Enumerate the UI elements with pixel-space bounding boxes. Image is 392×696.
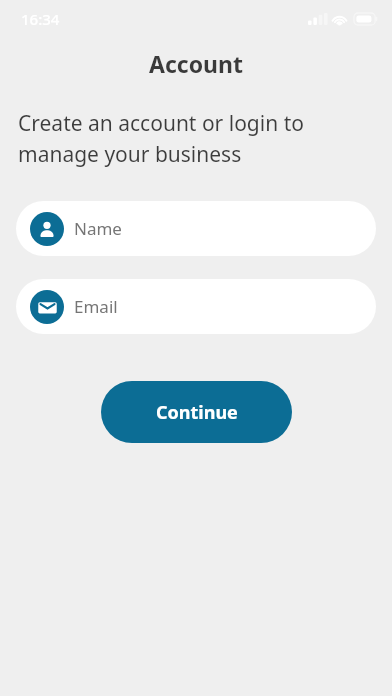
other: Name <box>30 212 64 246</box>
staticText: Email <box>74 295 118 318</box>
staticText: 16:34 <box>21 9 60 29</box>
staticText: Name <box>74 217 122 240</box>
button[interactable]: Continue <box>101 381 292 443</box>
button[interactable]: Name <box>16 201 376 256</box>
other: Email <box>30 290 64 324</box>
staticText: Create an account or login to manage you… <box>18 109 304 168</box>
staticText: Account <box>149 48 243 79</box>
staticText: Continue <box>156 400 238 425</box>
button[interactable]: Email <box>16 279 376 334</box>
